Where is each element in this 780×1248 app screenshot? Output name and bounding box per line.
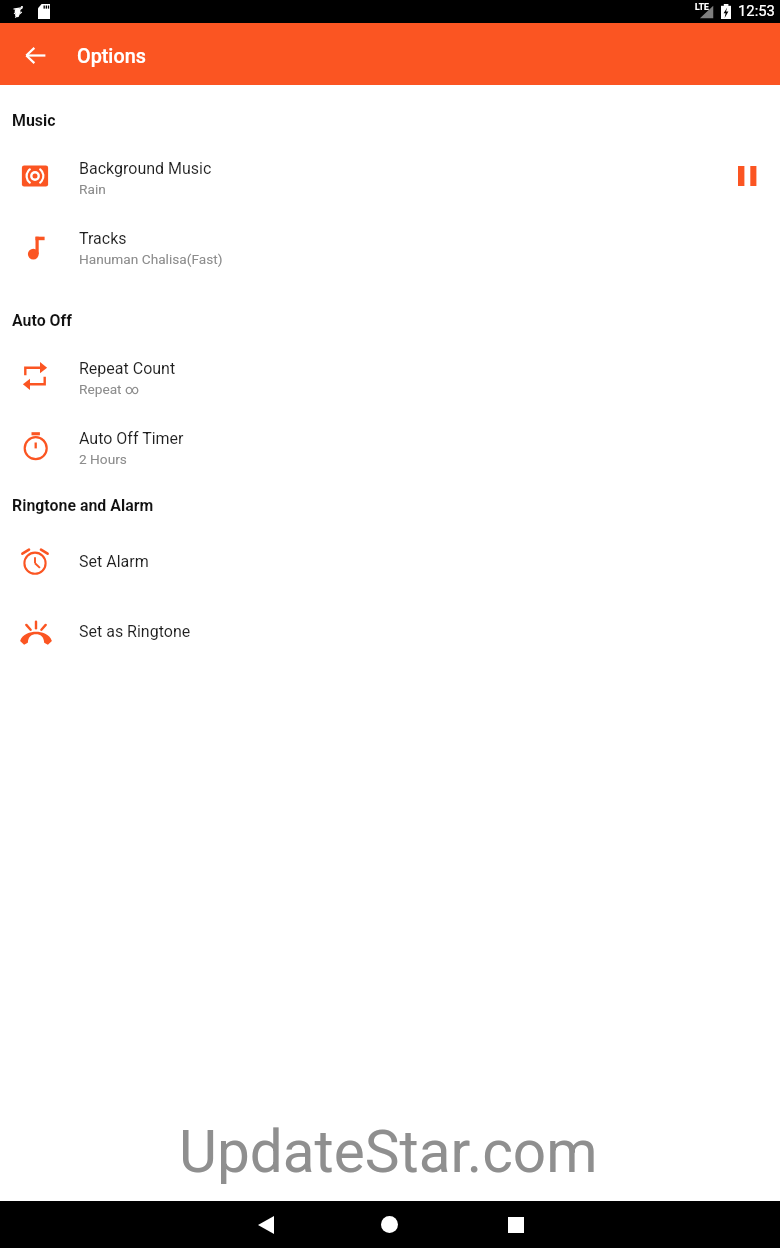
button[interactable]: Back (13, 33, 57, 77)
staticText: Repeat ∞ (79, 381, 140, 397)
staticText: 12:53 (738, 2, 775, 19)
staticText: LTE (695, 2, 709, 12)
staticText: Repeat Count (79, 359, 176, 378)
staticText: Ringtone and Alarm (12, 496, 154, 515)
staticText: Set Alarm (79, 552, 149, 571)
button[interactable]: Set as Ringtone (0, 597, 780, 667)
button[interactable]: Back (234, 1201, 297, 1248)
staticText: Auto Off Timer (79, 429, 184, 448)
button[interactable]: Recents (484, 1201, 547, 1248)
staticText: 2 Hours (79, 451, 127, 467)
button[interactable]: Tracks (0, 211, 780, 281)
staticText: Rain (79, 181, 106, 197)
staticText: Options (77, 45, 146, 68)
button[interactable]: Background Music (0, 141, 780, 211)
staticText: Auto Off (12, 311, 72, 330)
button[interactable]: Pause (723, 152, 771, 200)
staticText: Tracks (79, 229, 127, 248)
staticText: Set as Ringtone (79, 622, 191, 641)
button[interactable]: Set Alarm (0, 527, 780, 597)
button[interactable]: Home (358, 1201, 421, 1248)
staticText: Background Music (79, 159, 212, 178)
button[interactable]: Auto Off Timer (0, 411, 780, 481)
staticText: Hanuman Chalisa(Fast) (79, 251, 223, 267)
button[interactable]: Repeat Count (0, 341, 780, 411)
staticText: Music (12, 111, 56, 130)
staticText: UpdateStar.com (179, 1118, 598, 1187)
